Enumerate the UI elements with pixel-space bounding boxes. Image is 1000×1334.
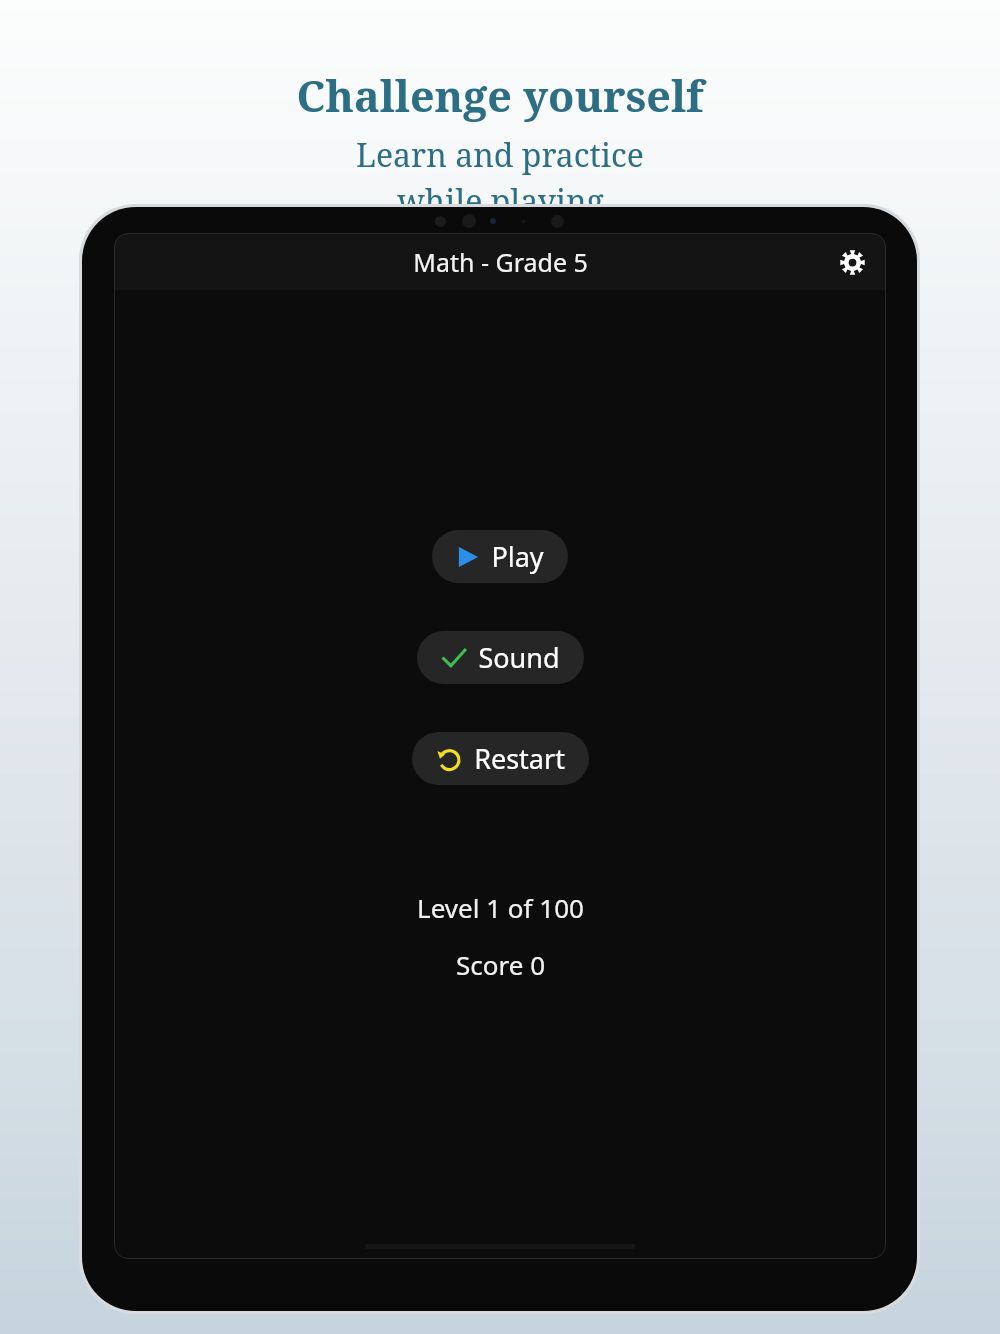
button[interactable]: Restart	[412, 732, 589, 785]
button[interactable]: Settings	[832, 242, 872, 282]
staticText: Score 0	[456, 947, 545, 982]
staticText: Restart	[474, 740, 565, 777]
staticText: while playing	[397, 179, 604, 223]
staticText: Sound	[478, 639, 560, 676]
button[interactable]: Play	[432, 530, 568, 583]
staticText: Math - Grade 5	[413, 245, 588, 279]
staticText: Play	[491, 538, 544, 575]
staticText: Level 1 of 100	[417, 890, 584, 925]
staticText: Learn and practice	[356, 133, 644, 177]
button[interactable]: Sound	[417, 631, 584, 684]
staticText: Challenge yourself	[296, 66, 704, 125]
